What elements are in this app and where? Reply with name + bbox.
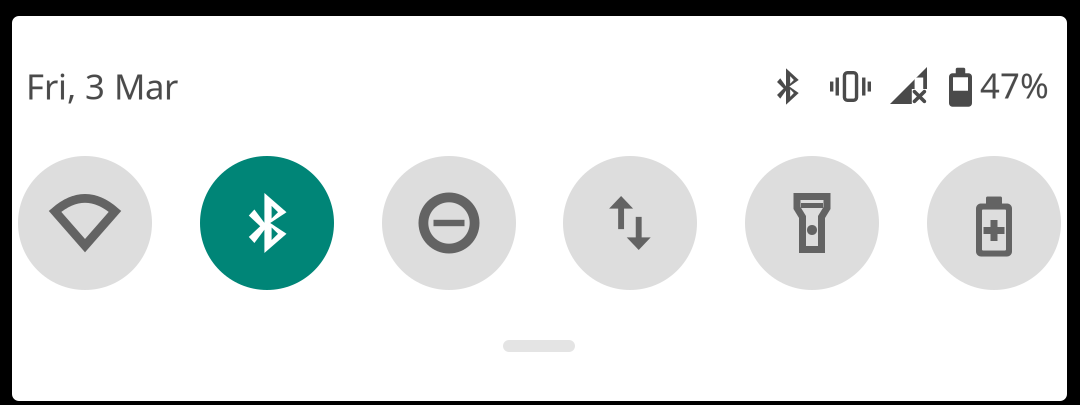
button[interactable]: Battery Saver <box>927 156 1061 290</box>
staticText: 47% <box>980 62 1049 108</box>
button[interactable]: Wi-Fi <box>18 156 152 290</box>
button[interactable]: Bluetooth <box>200 156 334 290</box>
button[interactable]: Do Not Disturb <box>382 156 516 290</box>
button[interactable]: Mobile data <box>563 156 697 290</box>
button[interactable]: Flashlight <box>745 156 879 290</box>
staticText: Fri, 3 Mar <box>26 63 178 109</box>
